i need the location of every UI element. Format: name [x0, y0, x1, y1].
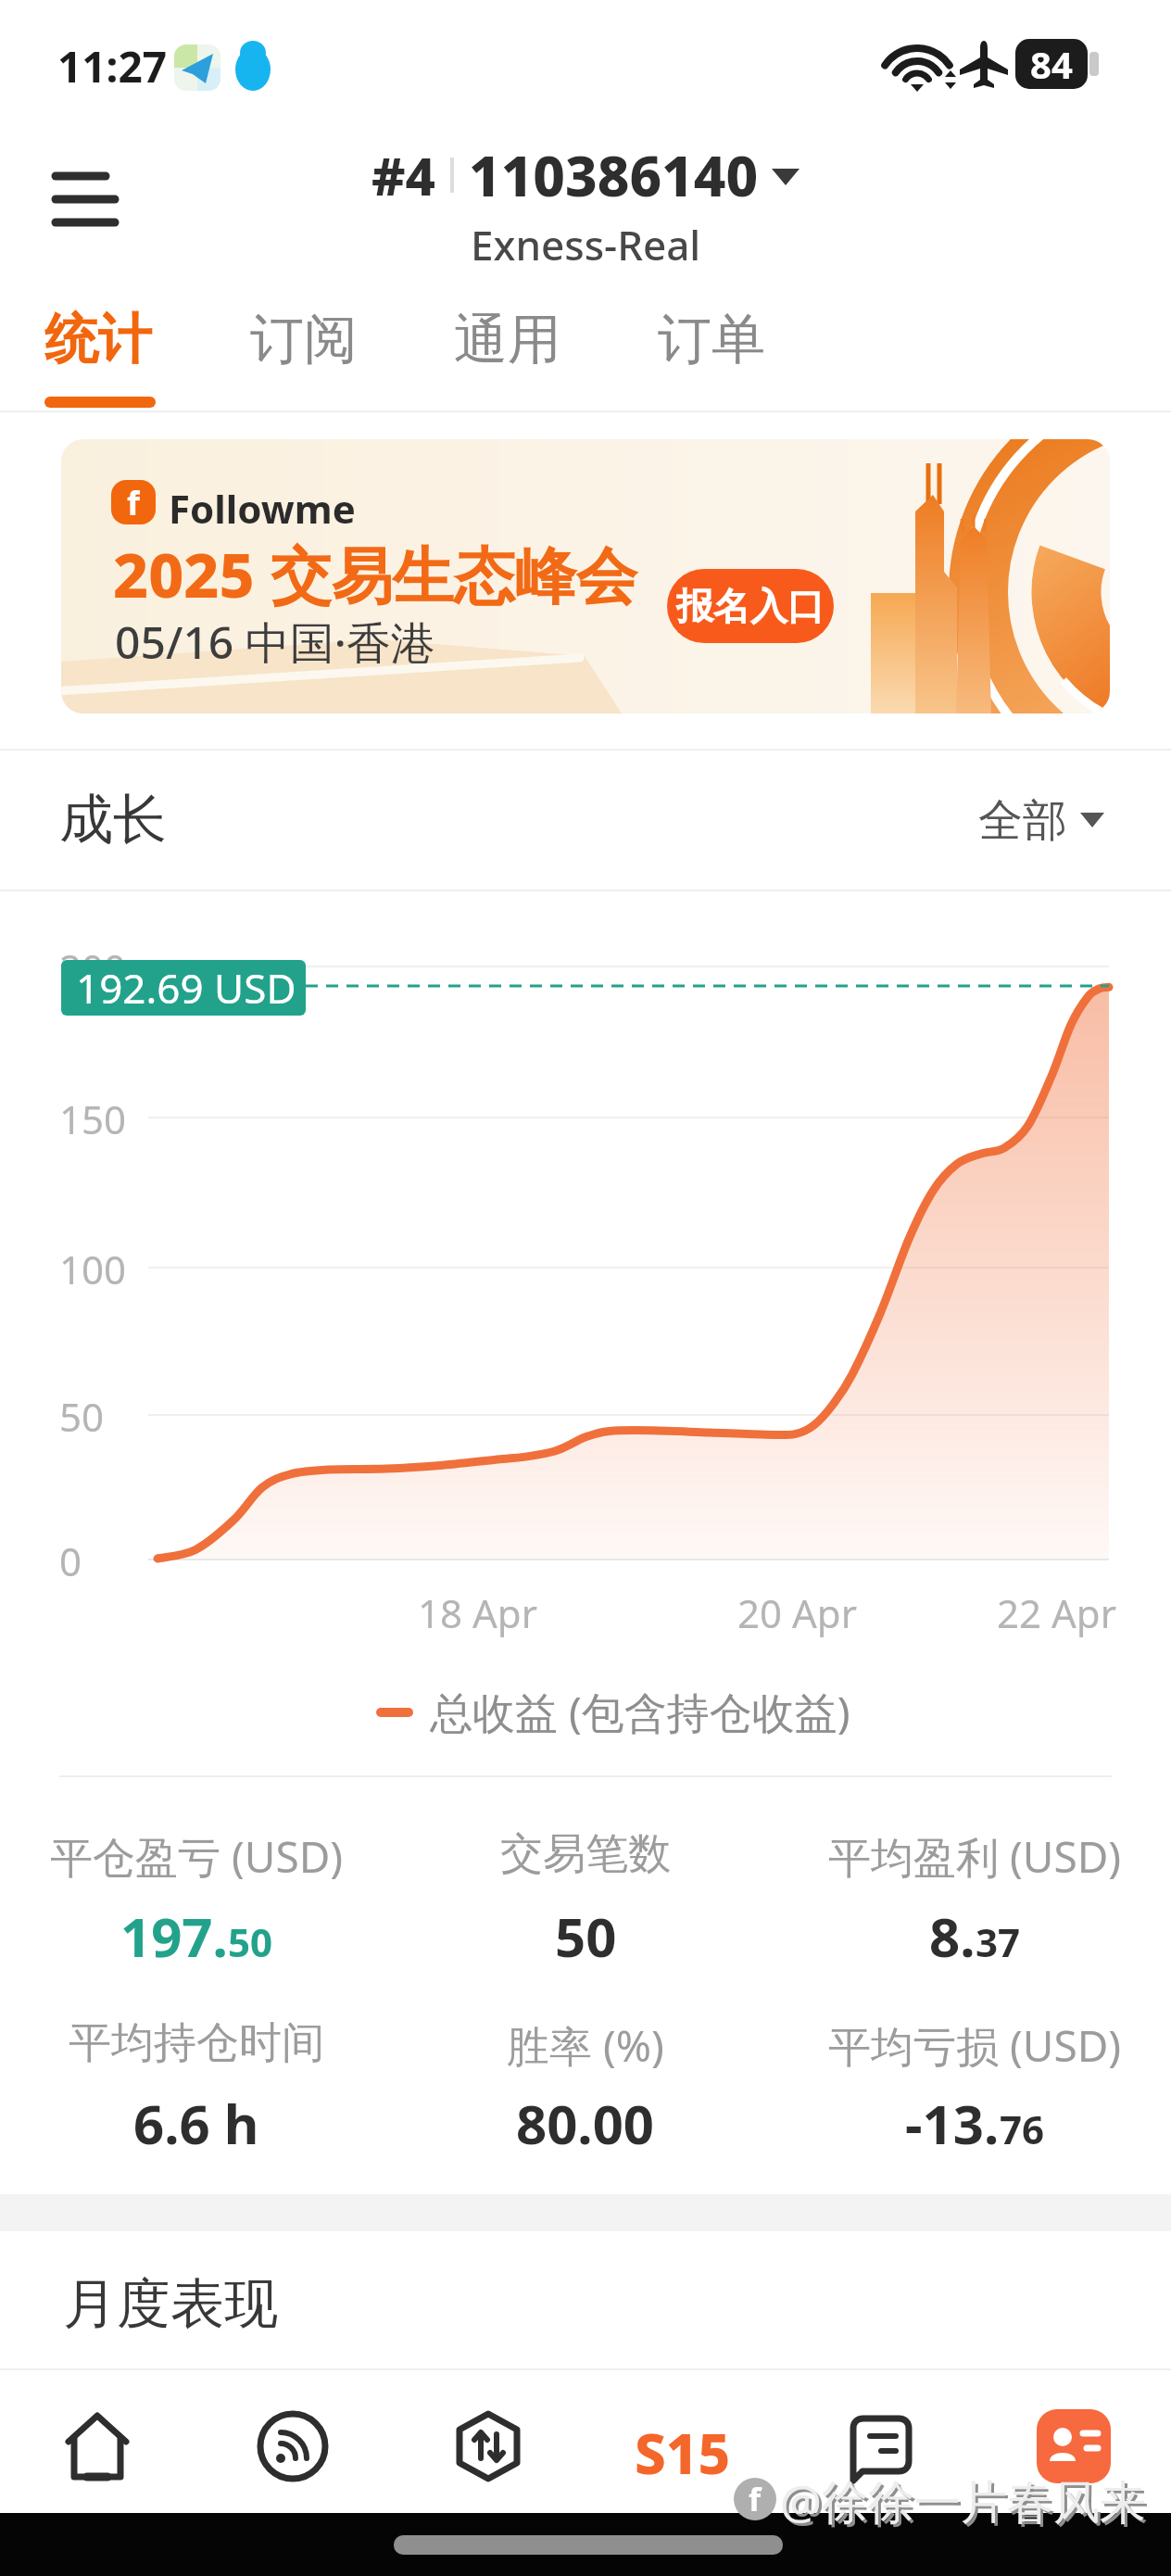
staticText: 8. [929, 1900, 976, 1973]
button[interactable] [54, 170, 117, 230]
button[interactable]: S15 [609, 2415, 757, 2491]
button[interactable]: 报名入口 [667, 569, 834, 643]
staticText: 84 [1030, 39, 1073, 89]
staticText: 月度表现 [63, 2270, 278, 2338]
staticText: 2025 交易生态峰会 [113, 532, 637, 615]
staticText: f [749, 2478, 762, 2520]
button[interactable]: 订单 [0, 0, 107, 68]
staticText: 197. [120, 1900, 228, 1973]
button[interactable] [1037, 2409, 1111, 2483]
staticText: 平均持仓时间 [69, 2016, 324, 2070]
staticText: f [127, 480, 140, 524]
staticText: 全部 [978, 793, 1067, 849]
button[interactable] [452, 2410, 524, 2482]
staticText: 0 [59, 1534, 82, 1587]
staticText: S15 [635, 2415, 731, 2491]
staticText: 平均盈利 (USD) [828, 1827, 1122, 1886]
staticText: 11:27 [57, 37, 168, 95]
staticText: 50 [228, 1915, 273, 1968]
staticText: 150 [59, 1092, 127, 1145]
staticText: Exness-Real [471, 217, 701, 272]
staticText: @徐徐一片春风来 [780, 2469, 1146, 2532]
staticText: 平均亏损 (USD) [828, 2016, 1122, 2075]
button[interactable] [842, 2414, 914, 2486]
staticText: 6.6 h [133, 2087, 259, 2160]
staticText: 交易笔数 [500, 1827, 671, 1881]
staticText: 37 [976, 1915, 1021, 1968]
staticText: 22 Apr [997, 1586, 1116, 1639]
button[interactable]: f [61, 439, 1110, 713]
staticText: 20 Apr [737, 1586, 857, 1639]
staticText: 50 [59, 1390, 105, 1443]
button[interactable]: #4 [0, 137, 1171, 213]
button[interactable] [61, 2410, 133, 2482]
staticText: 50 [555, 1900, 617, 1973]
button[interactable]: 统计 [0, 0, 107, 68]
staticText: 200 [59, 941, 127, 994]
staticText: 18 Apr [418, 1586, 537, 1639]
staticText: 76 [1000, 2102, 1045, 2155]
button[interactable]: 全部 [978, 793, 1104, 849]
staticText: 80.00 [516, 2087, 655, 2160]
staticText: 100 [59, 1243, 127, 1295]
staticText: 110386140 [469, 137, 759, 213]
staticText: 192.69 USD [76, 960, 296, 1016]
staticText: 成长 [59, 786, 167, 853]
staticText: 05/16 中国·香港 [115, 612, 435, 673]
staticText: 报名入口 [676, 583, 825, 629]
staticText: @徐徐一片春风来 [783, 2472, 1149, 2535]
button[interactable]: 订阅 [0, 0, 107, 68]
staticText: 胜率 (%) [507, 2016, 664, 2075]
button[interactable] [257, 2410, 329, 2482]
button[interactable]: 通用 [0, 0, 107, 68]
staticText: 总收益 (包含持仓收益) [430, 1683, 850, 1741]
staticText: Followme [169, 482, 356, 535]
staticText: #4 [371, 140, 435, 210]
staticText: -13. [905, 2087, 1000, 2160]
staticText: 平仓盈亏 (USD) [50, 1827, 344, 1886]
